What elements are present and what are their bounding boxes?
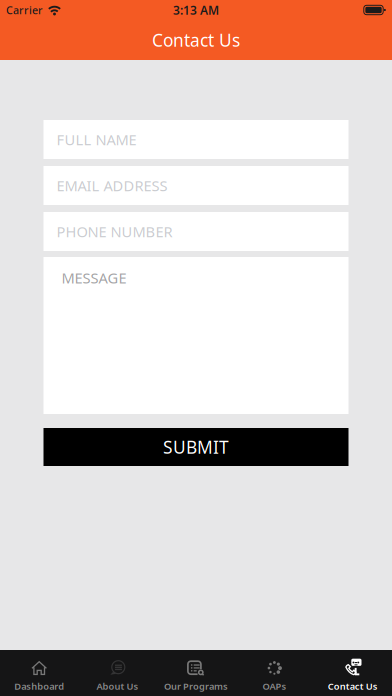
button[interactable]: Contact Us <box>314 650 392 696</box>
button[interactable]: Dashboard <box>0 650 78 696</box>
button[interactable]: MESSAGE <box>43 257 348 414</box>
staticText: EMAIL ADDRESS <box>56 176 167 195</box>
button[interactable]: Our Programs <box>157 650 235 696</box>
button[interactable]: FULL NAME <box>43 120 348 159</box>
staticText: OAPs <box>262 680 286 692</box>
button[interactable]: OAPs <box>235 650 314 696</box>
staticText: Contact Us <box>328 680 378 692</box>
staticText: Dashboard <box>14 680 64 692</box>
staticText: Carrier <box>6 3 43 17</box>
button[interactable]: About Us <box>78 650 157 696</box>
button[interactable]: EMAIL ADDRESS <box>43 166 348 205</box>
staticText: About Us <box>97 680 139 692</box>
button[interactable]: SUBMIT <box>43 428 348 466</box>
staticText: Our Programs <box>164 680 228 692</box>
button[interactable]: PHONE NUMBER <box>43 212 348 251</box>
staticText: SUBMIT <box>163 435 229 458</box>
staticText: 3:13 AM <box>173 2 219 18</box>
staticText: FULL NAME <box>56 130 136 149</box>
staticText: PHONE NUMBER <box>56 222 172 241</box>
staticText: Contact Us <box>152 28 240 51</box>
staticText: MESSAGE <box>61 268 126 287</box>
